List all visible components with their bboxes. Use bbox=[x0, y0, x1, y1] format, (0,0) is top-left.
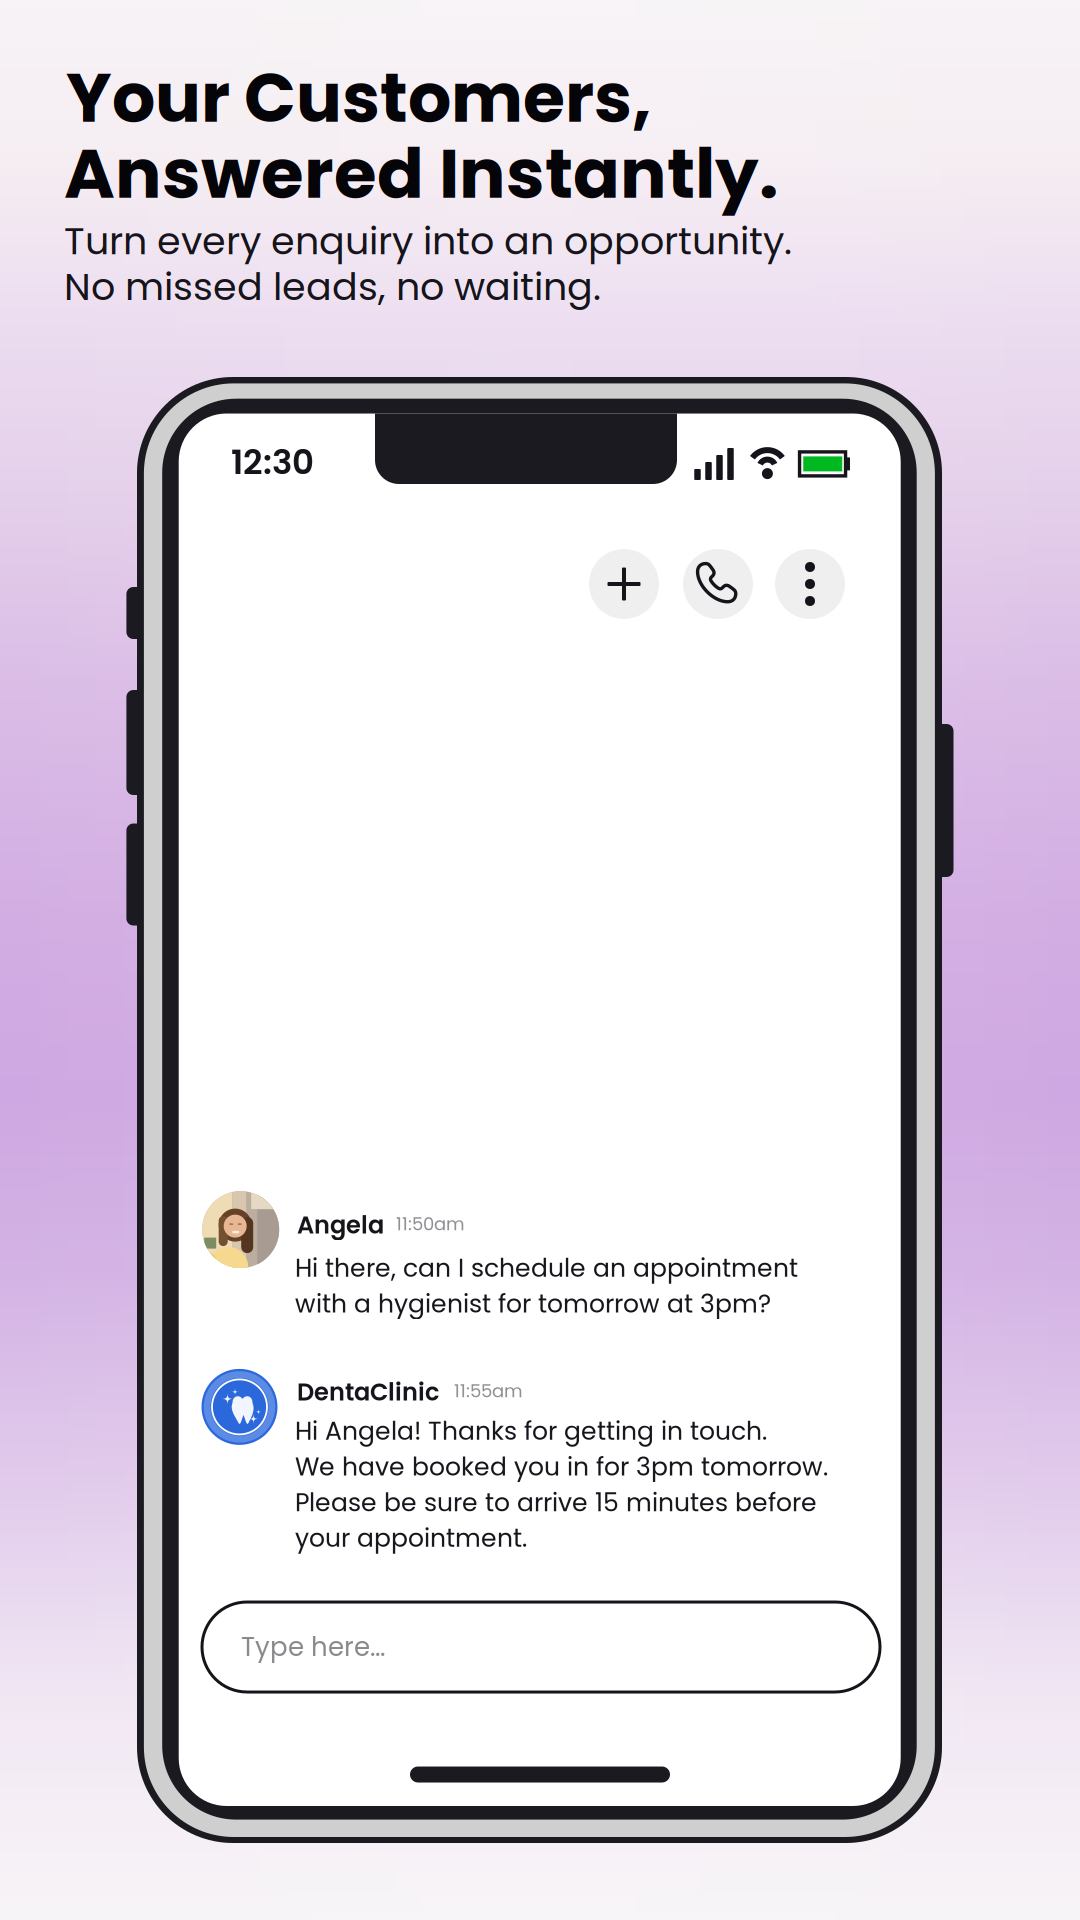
button[interactable]: Call bbox=[683, 549, 753, 619]
button[interactable]: Type here... bbox=[202, 1602, 880, 1692]
staticText: with a hygienist for tomorrow at 3pm? bbox=[295, 1286, 771, 1321]
button[interactable]: More options bbox=[775, 549, 845, 619]
staticText: Hi Angela! Thanks for getting in touch. bbox=[295, 1413, 767, 1448]
staticText: 11:50am bbox=[396, 1211, 465, 1237]
staticText: Type here... bbox=[241, 1629, 385, 1665]
staticText: No missed leads, no waiting. bbox=[64, 260, 601, 313]
staticText: Hi there, can I schedule an appointment bbox=[295, 1250, 798, 1285]
staticText: Please be sure to arrive 15 minutes befo… bbox=[295, 1485, 817, 1520]
staticText: 11:55am bbox=[454, 1378, 523, 1404]
staticText: Turn every enquiry into an opportunity. bbox=[64, 214, 792, 268]
staticText: Angela bbox=[297, 1208, 384, 1242]
staticText: 12:30 bbox=[231, 438, 314, 486]
staticText: DentaClinic bbox=[297, 1375, 439, 1409]
button[interactable]: New message bbox=[589, 549, 659, 619]
staticText: Answered Instantly. bbox=[64, 125, 778, 222]
staticText: We have booked you in for 3pm tomorrow. bbox=[295, 1449, 828, 1484]
staticText: your appointment. bbox=[295, 1521, 527, 1556]
staticText: Your Customers, bbox=[66, 50, 652, 146]
